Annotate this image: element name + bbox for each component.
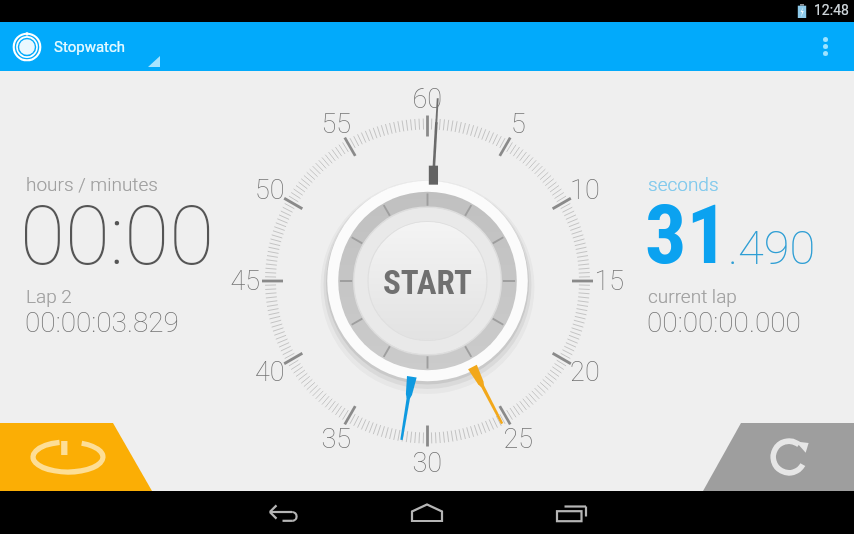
button[interactable]: Reset [721,423,854,491]
button[interactable]: Recents [498,491,644,534]
button[interactable]: App icon [9,29,45,65]
button[interactable]: Start stop [0,423,133,491]
button[interactable]: More options [803,22,848,71]
staticText: 12:48 [814,2,849,18]
button[interactable]: Back [211,491,356,534]
staticText: Stopwatch [54,38,126,56]
button[interactable]: Home [356,491,498,534]
